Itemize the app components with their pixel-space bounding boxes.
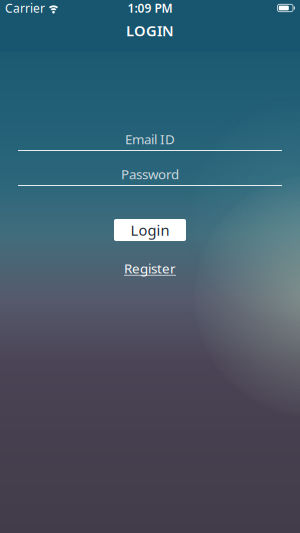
staticText: Email ID [125, 130, 175, 148]
button[interactable]: Password [0, 166, 300, 186]
button[interactable]: Email ID [0, 131, 300, 151]
button[interactable]: Login [114, 219, 186, 241]
staticText: Login [130, 220, 169, 240]
button[interactable]: Register [124, 259, 176, 277]
staticText: Carrier [5, 0, 45, 16]
staticText: Password [121, 165, 179, 183]
staticText: 1:09 PM [127, 0, 172, 16]
staticText: LOGIN [126, 21, 174, 40]
staticText: Register [124, 259, 176, 277]
